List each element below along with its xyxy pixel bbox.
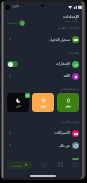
- button[interactable]: [5, 127, 81, 139]
- button[interactable]: Privacy: [38, 159, 50, 171]
- button[interactable]: [5, 139, 81, 151]
- button[interactable]: توفير: [57, 93, 79, 112]
- staticText: الحساب: [11, 164, 22, 167]
- staticText: وضع الاستخدام: [59, 87, 79, 91]
- staticText: حساب جوجل: [64, 19, 79, 23]
- button[interactable]: Home: [69, 155, 82, 171]
- staticText: توفير: [65, 104, 71, 107]
- staticText: الإعدادات العامة: [58, 26, 79, 30]
- button[interactable]: ليلي: [7, 93, 29, 112]
- button[interactable]: [5, 58, 81, 70]
- button[interactable]: نهاري: [32, 93, 54, 112]
- button[interactable]: واتساب: [7, 19, 25, 26]
- staticText: اللغة: [63, 74, 70, 78]
- button[interactable]: [5, 70, 81, 82]
- staticText: الإشعارات: [55, 62, 70, 66]
- staticText: تسجيل الدخول: [49, 37, 70, 42]
- staticText: نهاري: [40, 104, 47, 107]
- staticText: خيارات أخرى: [62, 120, 79, 124]
- button[interactable]: الحساب: [7, 161, 32, 169]
- staticText: واتساب: [7, 21, 18, 25]
- staticText: الاشتراكات: [54, 131, 70, 135]
- staticText: الخدمات: [68, 51, 79, 55]
- button[interactable]: Apps: [54, 159, 66, 170]
- staticText: الإعدادات: [63, 14, 79, 19]
- button[interactable]: [5, 33, 81, 45]
- staticText: ليلي: [16, 104, 21, 107]
- staticText: 9:41: [12, 5, 18, 9]
- staticText: عن ذلك: [59, 143, 70, 148]
